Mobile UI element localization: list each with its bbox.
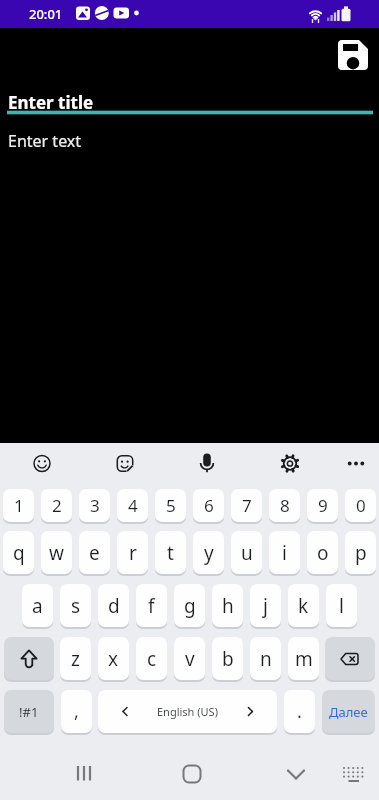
staticText: r	[129, 540, 137, 566]
staticText: l	[339, 593, 344, 619]
button[interactable]: 6	[193, 489, 224, 522]
staticText: n	[260, 646, 272, 672]
button[interactable]: .	[284, 690, 315, 733]
button[interactable]: n	[250, 637, 281, 680]
staticText: q	[13, 540, 25, 566]
button[interactable]: ,	[61, 690, 92, 733]
staticText: a	[32, 593, 43, 619]
staticText: 9	[318, 494, 328, 517]
button[interactable]: 8	[269, 489, 300, 522]
staticText: .	[297, 699, 302, 724]
staticText: Enter text	[8, 130, 82, 152]
button[interactable]: 0	[345, 489, 376, 522]
button[interactable]: 7	[231, 489, 262, 522]
button[interactable]: Далее	[322, 690, 375, 733]
staticText: f	[148, 593, 155, 619]
staticText: 3	[90, 494, 100, 517]
button[interactable]: 5	[155, 489, 186, 522]
button[interactable]: m	[288, 637, 319, 680]
button[interactable]: English (US)	[98, 690, 277, 733]
button[interactable]: t	[155, 531, 186, 574]
button[interactable]: !#1	[4, 690, 54, 733]
button[interactable]	[186, 443, 228, 483]
button[interactable]: q	[3, 531, 34, 574]
button[interactable]	[276, 754, 316, 794]
staticText: w	[49, 540, 64, 566]
staticText: m	[295, 646, 313, 672]
staticText: o	[317, 540, 329, 566]
staticText: ,	[74, 699, 79, 724]
staticText: b	[222, 646, 234, 672]
button[interactable]: g	[174, 584, 205, 627]
button[interactable]	[325, 637, 375, 680]
staticText: v	[185, 646, 195, 672]
button[interactable]: y	[193, 531, 224, 574]
staticText: h	[222, 593, 234, 619]
staticText: 1	[14, 494, 24, 517]
button[interactable]: z	[60, 637, 91, 680]
staticText: z	[71, 646, 80, 672]
button[interactable]: w	[41, 531, 72, 574]
staticText: u	[241, 540, 253, 566]
button[interactable]: 9	[307, 489, 338, 522]
button[interactable]: o	[307, 531, 338, 574]
button[interactable]: s	[60, 584, 91, 627]
button[interactable]: x	[98, 637, 129, 680]
button[interactable]	[335, 443, 377, 483]
button[interactable]	[4, 637, 54, 680]
staticText: p	[355, 540, 367, 566]
staticText: k	[298, 593, 309, 619]
staticText: 2	[52, 494, 62, 517]
button[interactable]	[331, 33, 375, 77]
button[interactable]	[64, 754, 104, 794]
button[interactable]: p	[345, 531, 376, 574]
staticText: !#1	[19, 703, 39, 721]
staticText: y	[204, 540, 214, 566]
staticText: 20:01	[29, 5, 63, 23]
staticText: x	[108, 646, 119, 672]
button[interactable]: h	[212, 584, 243, 627]
staticText: 7	[242, 494, 252, 517]
button[interactable]	[21, 443, 63, 483]
button[interactable]: 4	[117, 489, 148, 522]
button[interactable]	[269, 443, 311, 483]
staticText: Далее	[329, 703, 368, 721]
staticText: 0	[356, 494, 366, 517]
button[interactable]	[172, 754, 212, 794]
button[interactable]: 1	[3, 489, 34, 522]
button[interactable]: f	[136, 584, 167, 627]
button[interactable]: c	[136, 637, 167, 680]
staticText: 8	[280, 494, 290, 517]
button[interactable]: v	[174, 637, 205, 680]
button[interactable]: l	[326, 584, 357, 627]
staticText: e	[89, 540, 100, 566]
button[interactable]: 2	[41, 489, 72, 522]
button[interactable]: a	[22, 584, 53, 627]
staticText: t	[167, 540, 174, 566]
button[interactable]: 3	[79, 489, 110, 522]
button[interactable]: e	[79, 531, 110, 574]
button[interactable]: b	[212, 637, 243, 680]
staticText: English (US)	[157, 704, 218, 719]
button[interactable]	[333, 754, 373, 794]
staticText: Enter title	[8, 91, 94, 114]
button[interactable]: k	[288, 584, 319, 627]
button[interactable]	[104, 443, 146, 483]
button[interactable]: u	[231, 531, 262, 574]
staticText: d	[108, 593, 120, 619]
button[interactable]: i	[269, 531, 300, 574]
button[interactable]: r	[117, 531, 148, 574]
button[interactable]: j	[250, 584, 281, 627]
staticText: c	[147, 646, 157, 672]
staticText: 4	[128, 494, 138, 517]
button[interactable]: d	[98, 584, 129, 627]
staticText: 6	[204, 494, 214, 517]
staticText: s	[71, 593, 81, 619]
staticText: j	[263, 593, 268, 619]
staticText: i	[282, 540, 287, 566]
staticText: 5	[166, 494, 176, 517]
staticText: g	[184, 593, 196, 619]
